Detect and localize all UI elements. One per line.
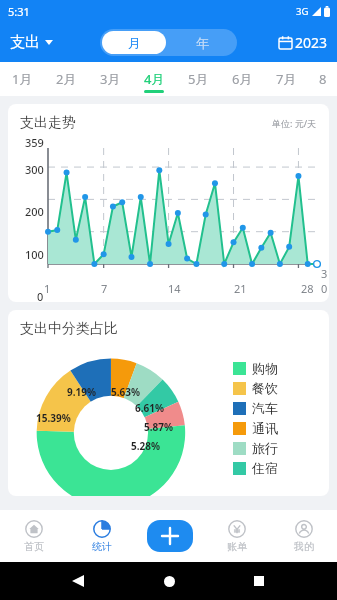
button[interactable]: 旅行	[233, 440, 329, 456]
button[interactable]: 1月	[0, 62, 44, 96]
staticText: 通讯	[252, 420, 278, 436]
button[interactable]: 支出	[6, 27, 57, 58]
button[interactable]: 7月	[264, 62, 308, 96]
button[interactable]: 我的	[270, 510, 337, 562]
staticText: 我的	[294, 540, 314, 553]
button[interactable]: 年	[168, 29, 237, 56]
staticText: 支出	[10, 33, 40, 52]
staticText: 账单	[227, 540, 247, 553]
button[interactable]: 4月	[132, 62, 176, 96]
staticText: 14	[168, 281, 181, 296]
button[interactable]: 住宿	[233, 460, 329, 476]
staticText: 年	[196, 35, 209, 51]
staticText: 30	[321, 266, 329, 296]
staticText: 4月	[144, 70, 165, 88]
button[interactable]: 通讯	[233, 420, 329, 436]
staticText: 餐饮	[252, 380, 278, 396]
button[interactable]: Recents	[247, 569, 271, 593]
button[interactable]: 6月	[220, 62, 264, 96]
button[interactable]: 3月	[88, 62, 132, 96]
staticText: 6月	[232, 70, 253, 88]
staticText: 9.19%	[67, 385, 96, 399]
staticText: 2023	[295, 33, 328, 52]
staticText: 5:31	[8, 4, 30, 19]
staticText: 单位: 元/天	[272, 117, 317, 129]
button[interactable]: 汽车	[233, 400, 329, 416]
button[interactable]: 首页	[0, 510, 68, 562]
button[interactable]: 8	[308, 62, 337, 96]
button[interactable]: Select year	[276, 30, 331, 55]
staticText: 359	[25, 135, 44, 150]
button[interactable]: 统计	[68, 510, 136, 562]
staticText: 月	[128, 35, 141, 51]
staticText: 0	[37, 289, 44, 302]
staticText: 1月	[12, 70, 33, 88]
staticText: 5月	[188, 70, 209, 88]
staticText: 支出走势	[20, 114, 76, 132]
staticText: 支出中分类占比	[20, 320, 118, 338]
staticText: 3G	[296, 5, 309, 18]
staticText: 7月	[276, 70, 297, 88]
staticText: 5.87%	[144, 420, 173, 434]
staticText: 首页	[24, 540, 44, 553]
staticText: 28	[301, 281, 314, 296]
button[interactable]: Back	[66, 569, 90, 593]
staticText: 15.39%	[36, 411, 71, 425]
staticText: 100	[25, 247, 44, 262]
staticText: 汽车	[252, 400, 278, 416]
staticText: 200	[25, 204, 44, 219]
other: Select year	[279, 36, 292, 49]
staticText: 购物	[252, 360, 278, 376]
button[interactable]: 购物	[233, 360, 329, 376]
button[interactable]: 2月	[44, 62, 88, 96]
button[interactable]: 账单	[203, 510, 270, 562]
button[interactable]: 5月	[176, 62, 220, 96]
staticText: 5.63%	[111, 385, 140, 399]
staticText: 7	[101, 281, 108, 296]
staticText: 2月	[56, 70, 77, 88]
button[interactable]: Add record	[147, 520, 193, 552]
staticText: 住宿	[252, 460, 278, 476]
button[interactable]: Home	[157, 569, 181, 593]
staticText: 300	[25, 162, 44, 177]
staticText: 8	[319, 70, 327, 88]
staticText: 6.61%	[135, 401, 164, 415]
staticText: 旅行	[252, 440, 278, 456]
staticText: 3月	[100, 70, 121, 88]
staticText: 1	[44, 281, 51, 296]
staticText: 5.28%	[131, 439, 160, 453]
button[interactable]: 月	[102, 31, 166, 54]
staticText: 21	[234, 281, 247, 296]
button[interactable]: 餐饮	[233, 380, 329, 396]
staticText: 统计	[92, 540, 112, 553]
